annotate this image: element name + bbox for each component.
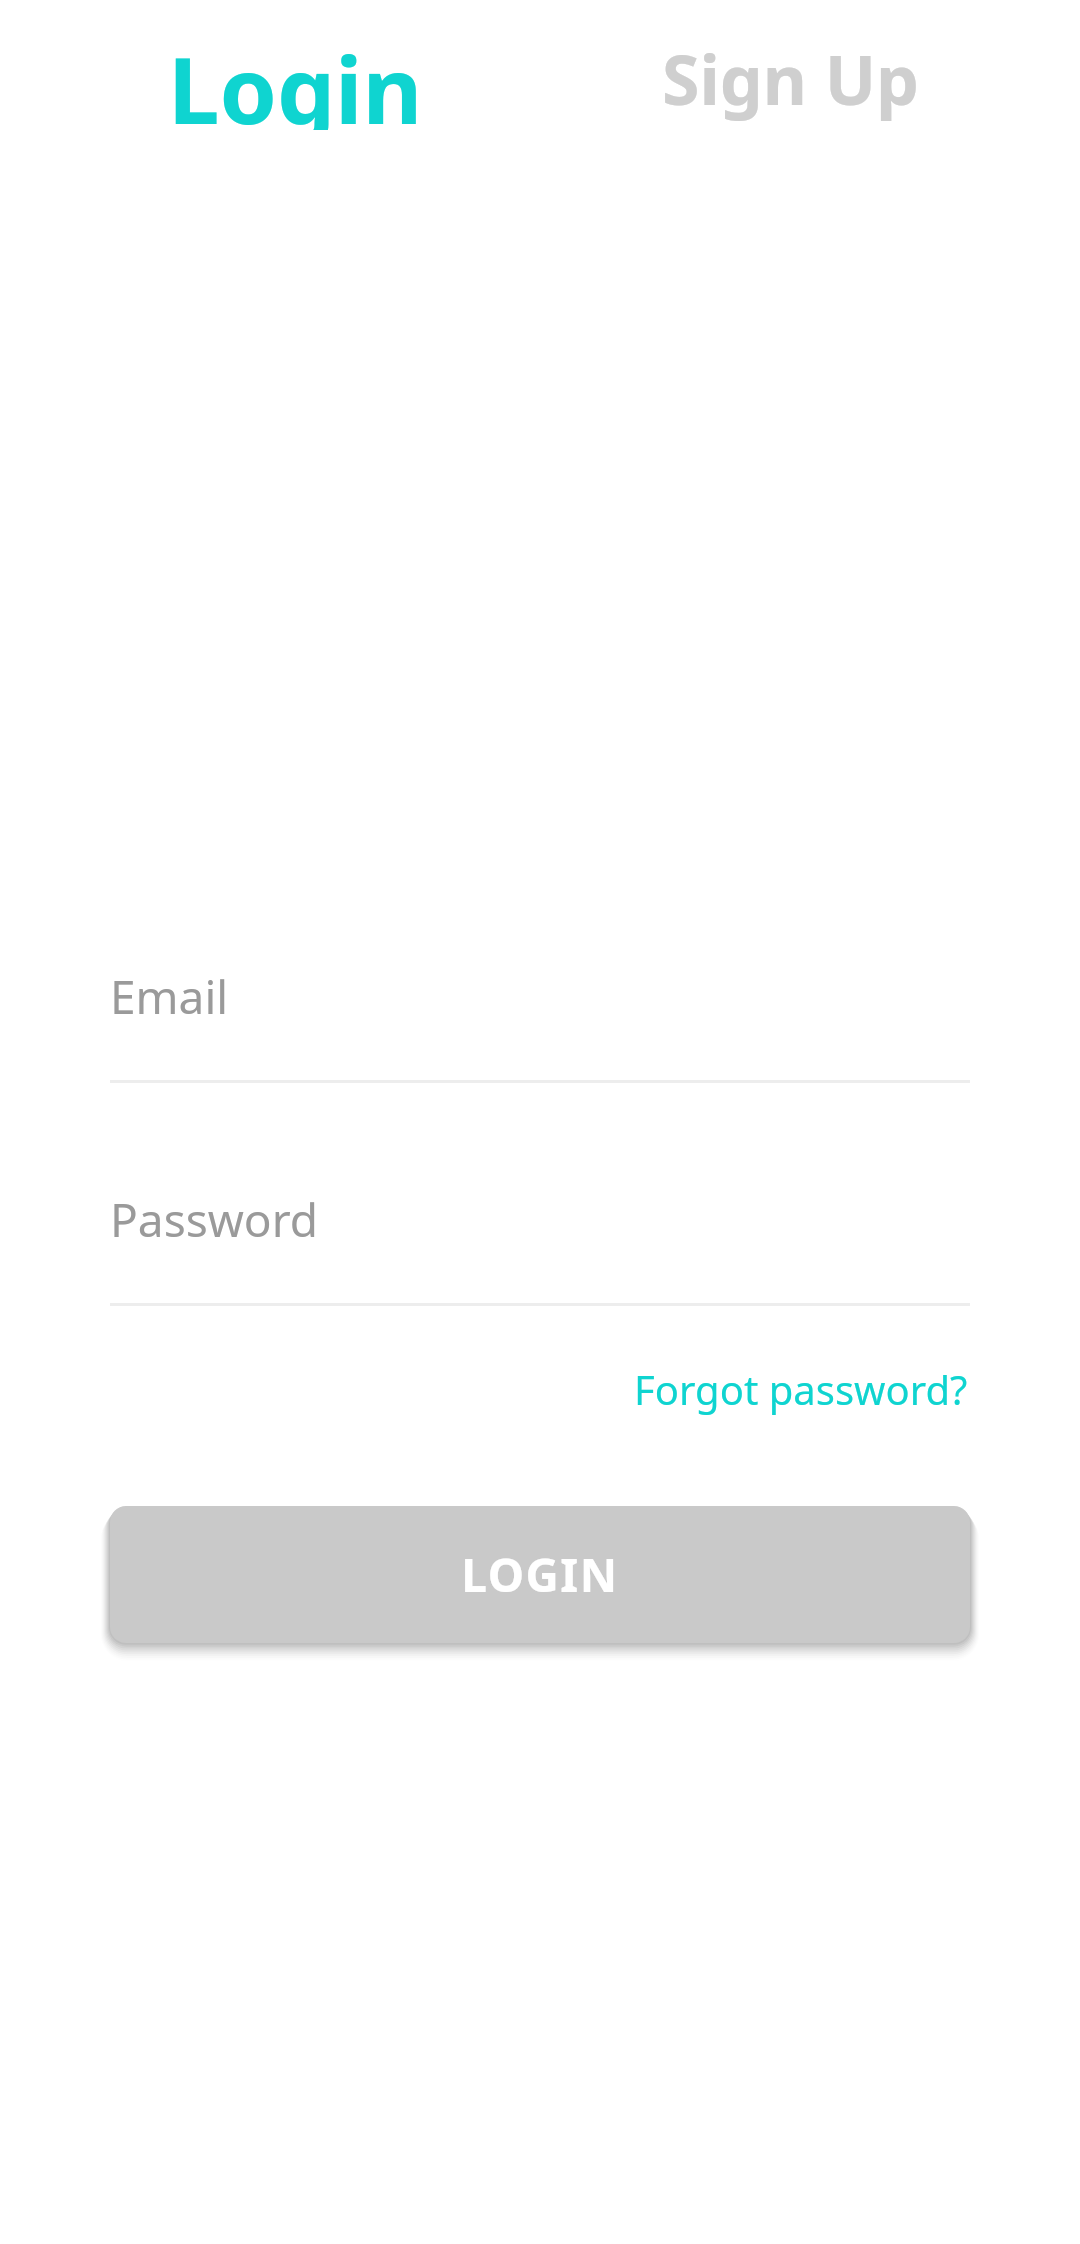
button[interactable]: Login <box>168 26 423 130</box>
staticText: Sign Up <box>662 32 920 125</box>
button[interactable]: Email <box>110 952 970 1083</box>
staticText: LOGIN <box>461 1543 619 1606</box>
button[interactable]: Sign Up <box>662 32 920 125</box>
staticText: Password <box>110 1188 319 1251</box>
button[interactable]: Password <box>110 1175 970 1306</box>
button[interactable]: Forgot password? <box>632 1358 970 1420</box>
staticText: Email <box>110 965 229 1028</box>
button[interactable]: LOGIN <box>110 1506 970 1643</box>
staticText: Login <box>168 26 423 130</box>
staticText: Forgot password? <box>634 1362 968 1416</box>
